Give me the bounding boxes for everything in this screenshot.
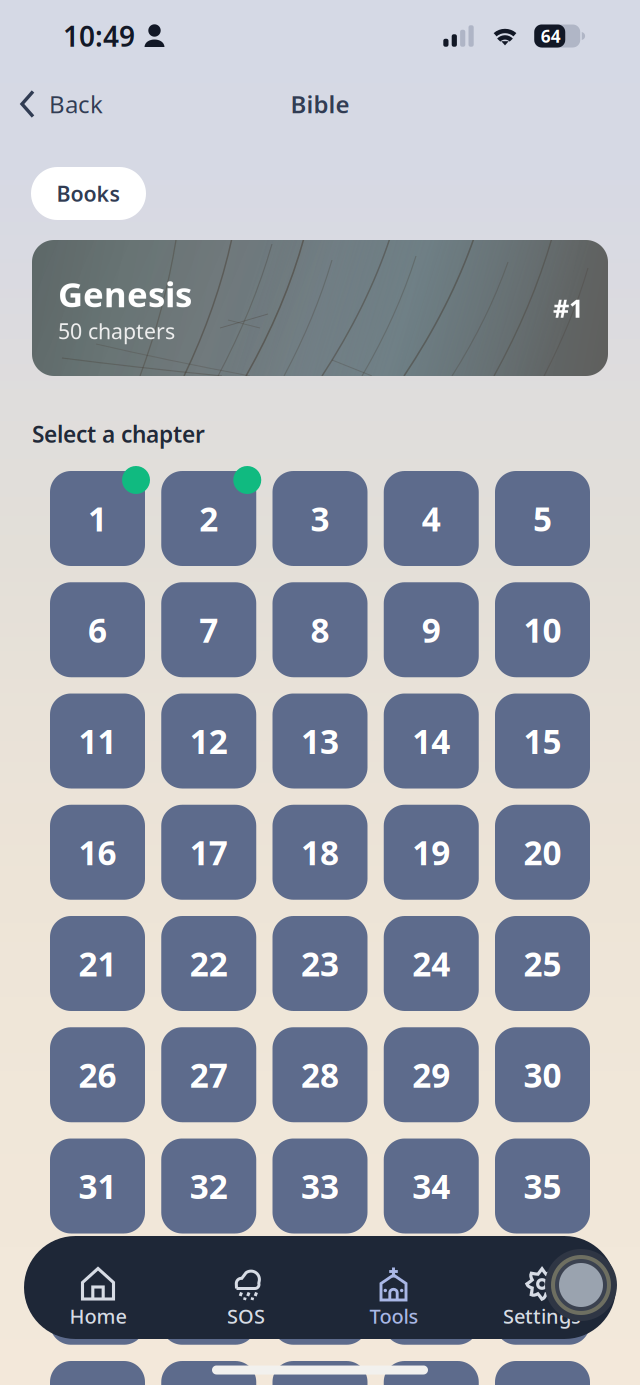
button[interactable]: 15	[495, 693, 590, 788]
button[interactable]: 6	[50, 582, 145, 677]
button[interactable]: 27	[161, 1027, 256, 1122]
staticText: 29	[412, 1053, 450, 1097]
button[interactable]: 11	[50, 693, 145, 788]
button[interactable]: 25	[495, 916, 590, 1011]
staticText: Select a chapter	[32, 419, 205, 449]
staticText: 50 chapters	[58, 317, 175, 345]
staticText: 23	[301, 941, 339, 986]
button[interactable]: 4	[384, 471, 479, 566]
button[interactable]: 39	[384, 1250, 479, 1345]
staticText: 35	[523, 1164, 561, 1208]
button[interactable]: 5	[495, 471, 590, 566]
staticText: 25	[523, 941, 561, 986]
staticText: 4	[422, 496, 441, 541]
staticText: 1	[88, 496, 107, 541]
staticText: 3	[310, 496, 329, 541]
staticText: 26	[78, 1053, 116, 1097]
staticText: Settings	[503, 1303, 581, 1329]
button[interactable]: 44	[384, 1361, 479, 1385]
button[interactable]: 17	[161, 805, 256, 900]
button[interactable]: 13	[272, 693, 367, 788]
button[interactable]: 23	[272, 916, 367, 1011]
staticText: Home	[69, 1303, 126, 1329]
staticText: 16	[78, 830, 116, 874]
staticText: 21	[78, 941, 116, 986]
button[interactable]: 32	[161, 1138, 256, 1233]
staticText: 28	[301, 1053, 339, 1097]
button[interactable]: 18	[272, 805, 367, 900]
button[interactable]: 41	[50, 1361, 145, 1385]
button[interactable]: 37	[161, 1250, 256, 1345]
staticText: 12	[190, 719, 228, 763]
button[interactable]: 16	[50, 805, 145, 900]
button[interactable]: 43	[272, 1361, 367, 1385]
staticText: 13	[301, 719, 339, 763]
staticText: Bible	[290, 88, 349, 120]
staticText: 11	[78, 719, 116, 763]
button[interactable]: 7	[161, 582, 256, 677]
staticText: 39	[412, 1275, 450, 1319]
button[interactable]: 10	[495, 582, 590, 677]
staticText: SOS	[227, 1303, 265, 1329]
staticText: Books	[56, 179, 120, 208]
button[interactable]: 45	[495, 1361, 590, 1385]
button[interactable]: Tools	[320, 1236, 468, 1339]
button[interactable]: 14	[384, 693, 479, 788]
staticText: 32	[190, 1164, 228, 1208]
staticText: 7	[199, 608, 218, 652]
button[interactable]: Settings	[468, 1236, 616, 1339]
button[interactable]: 21	[50, 916, 145, 1011]
staticText: 34	[412, 1164, 450, 1208]
staticText: 31	[78, 1164, 116, 1208]
staticText: Back	[49, 88, 103, 120]
button[interactable]: 38	[272, 1250, 367, 1345]
button[interactable]: 2	[161, 471, 256, 566]
staticText: 64	[541, 24, 561, 47]
staticText: 8	[310, 608, 329, 652]
button[interactable]: SOS	[172, 1236, 320, 1339]
button[interactable]: 40	[495, 1250, 590, 1345]
button[interactable]: 26	[50, 1027, 145, 1122]
staticText: 10:49	[63, 17, 135, 55]
staticText: 30	[523, 1053, 561, 1097]
staticText: 27	[190, 1053, 228, 1097]
button[interactable]: 34	[384, 1138, 479, 1233]
button[interactable]: 24	[384, 916, 479, 1011]
button[interactable]: 1	[50, 471, 145, 566]
staticText: 19	[412, 830, 450, 874]
staticText: 36	[78, 1275, 116, 1319]
button[interactable]: 31	[50, 1138, 145, 1233]
button[interactable]: 19	[384, 805, 479, 900]
button[interactable]: 35	[495, 1138, 590, 1233]
staticText: 15	[523, 719, 561, 763]
staticText: 33	[301, 1164, 339, 1208]
button[interactable]: 30	[495, 1027, 590, 1122]
button[interactable]: 3	[272, 471, 367, 566]
button[interactable]: 36	[50, 1250, 145, 1345]
staticText: 40	[523, 1275, 561, 1319]
button[interactable]: 12	[161, 693, 256, 788]
button[interactable]: 20	[495, 805, 590, 900]
button[interactable]: Home	[24, 1236, 172, 1339]
staticText: 5	[533, 496, 552, 541]
button[interactable]: Books	[31, 167, 146, 220]
staticText: 22	[190, 941, 228, 986]
staticText: 9	[422, 608, 441, 652]
button[interactable]: 9	[384, 582, 479, 677]
button[interactable]: 42	[161, 1361, 256, 1385]
staticText: 2	[199, 496, 218, 541]
staticText: 10	[523, 608, 561, 652]
button[interactable]: 22	[161, 916, 256, 1011]
button[interactable]: 28	[272, 1027, 367, 1122]
button[interactable]: 29	[384, 1027, 479, 1122]
staticText: 18	[301, 830, 339, 874]
staticText: Genesis	[58, 271, 192, 317]
button[interactable]: Back	[0, 74, 122, 134]
staticText: 17	[190, 830, 228, 874]
staticText: #1	[553, 291, 583, 325]
staticText: 20	[523, 830, 561, 874]
button[interactable]: 33	[272, 1138, 367, 1233]
button[interactable]: 8	[272, 582, 367, 677]
